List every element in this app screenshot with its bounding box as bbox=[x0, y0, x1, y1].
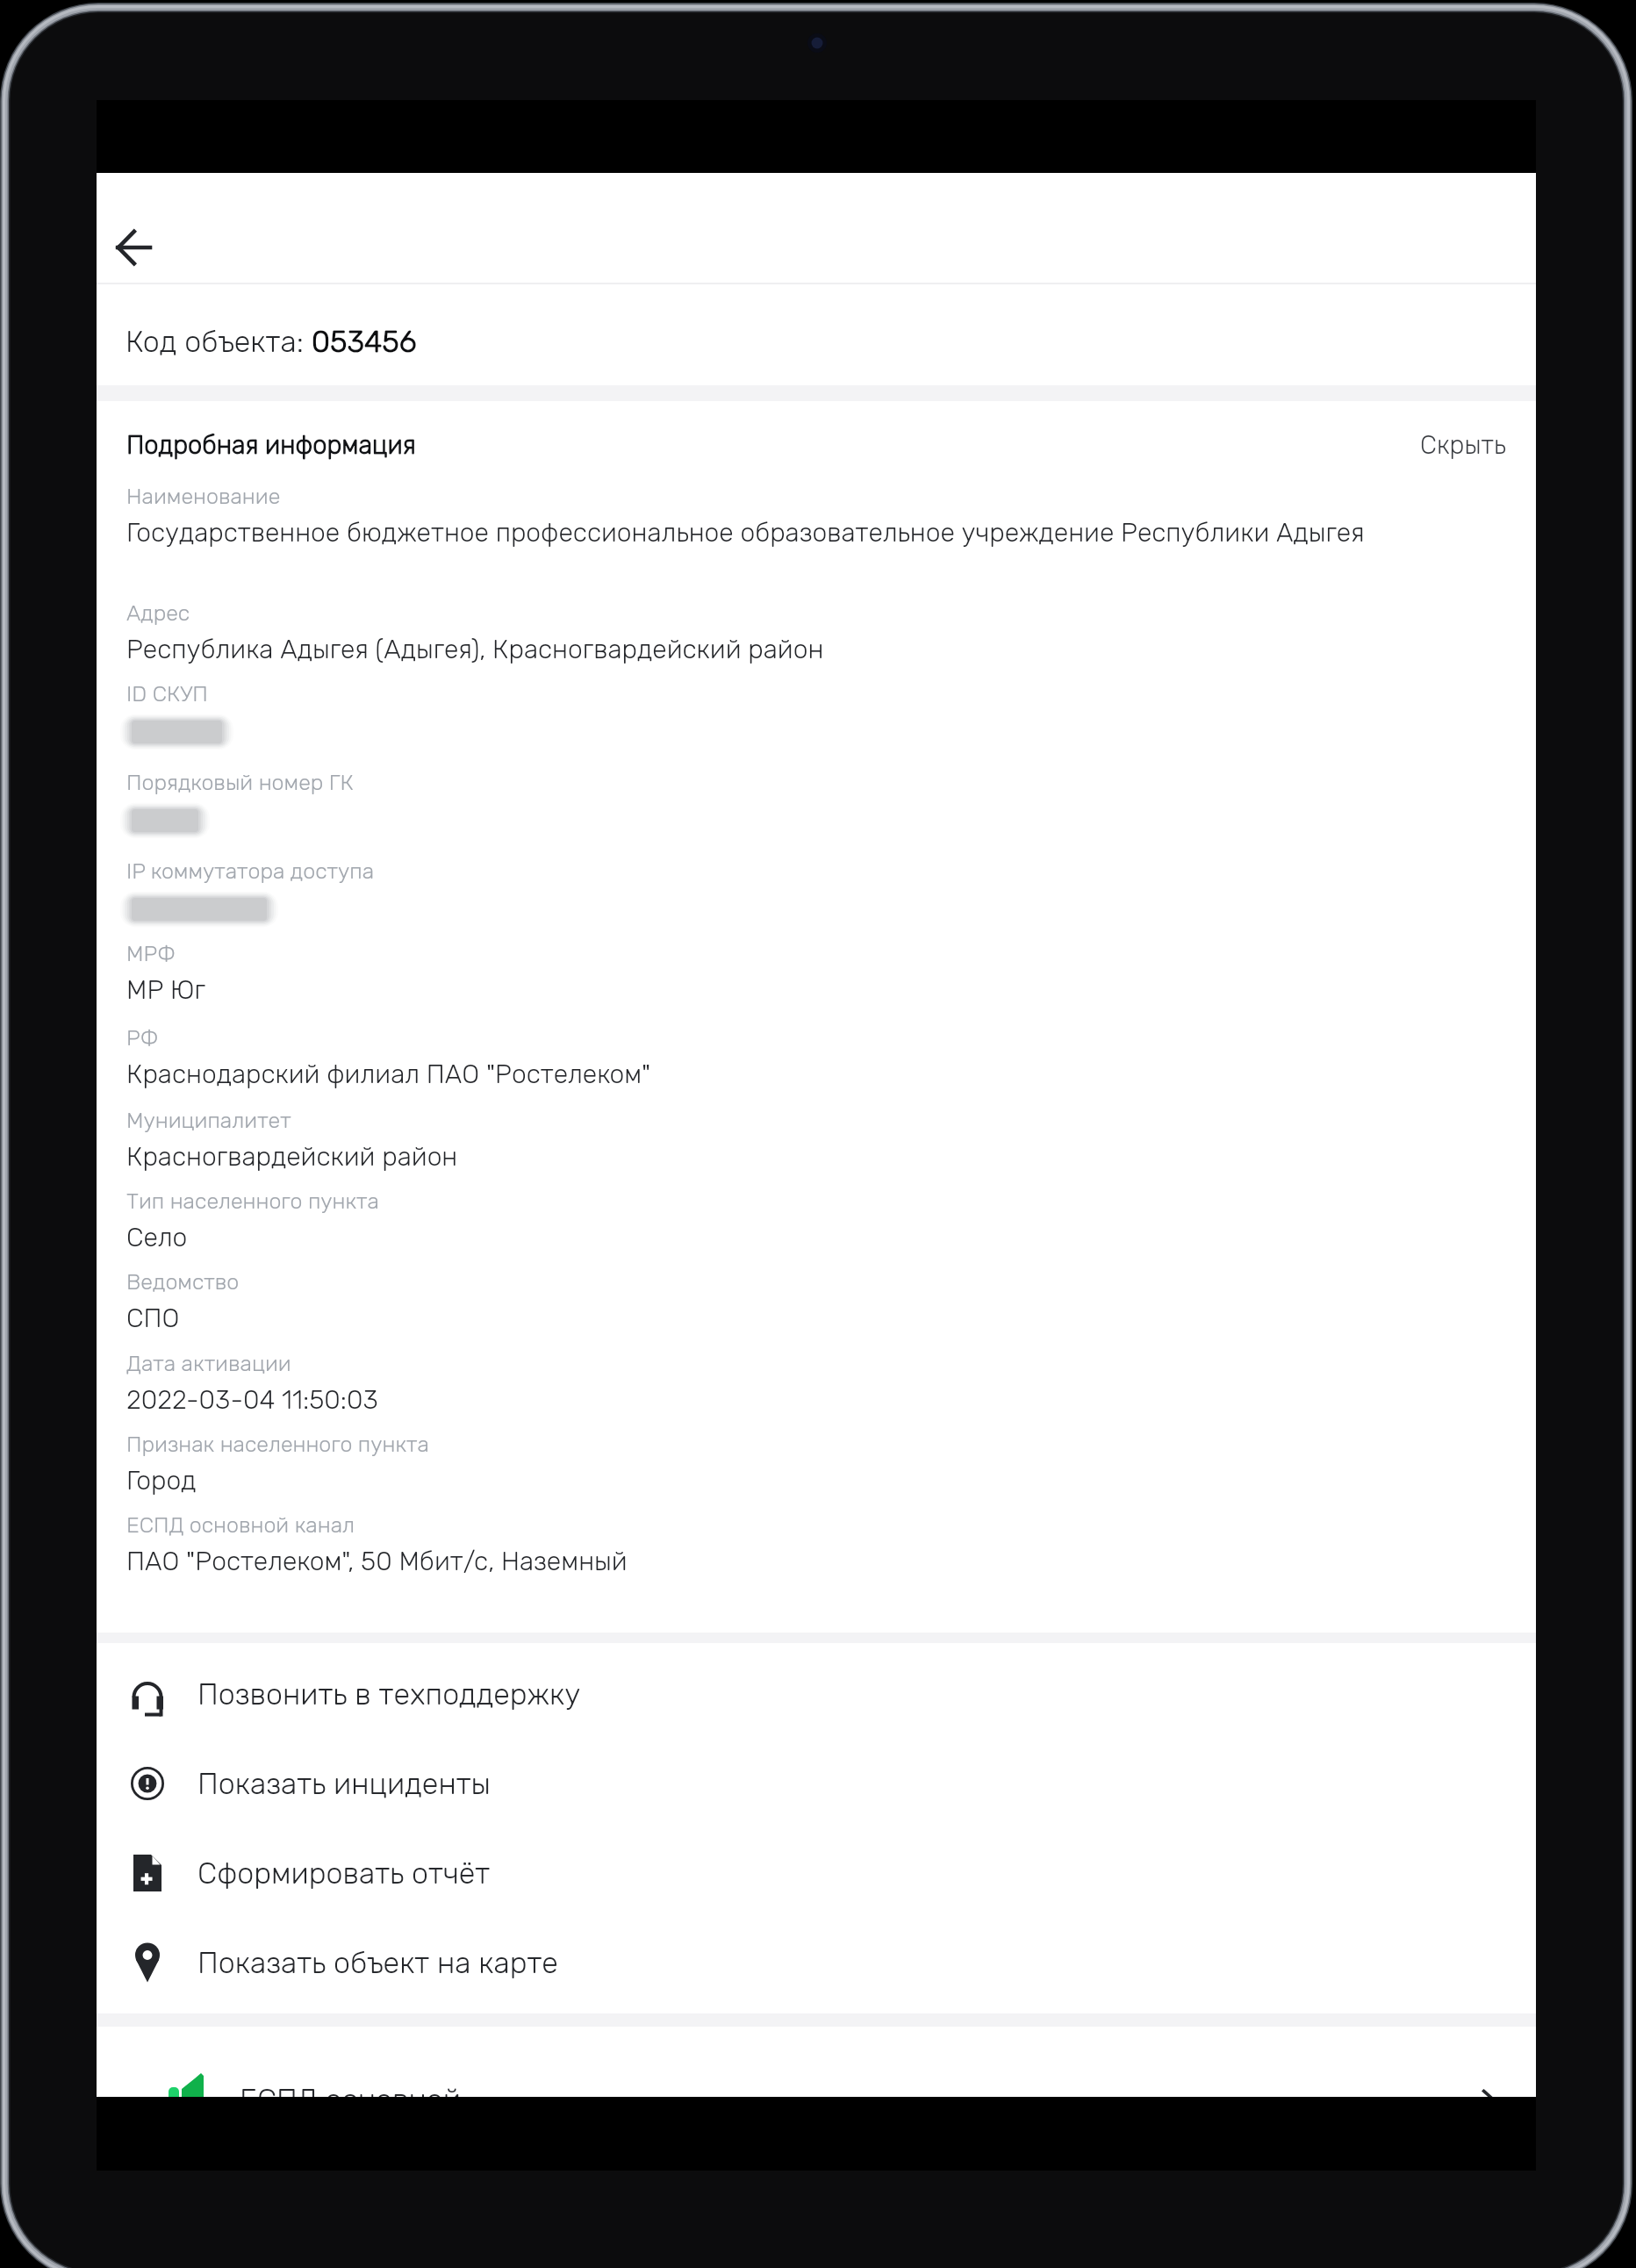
button[interactable]: Open bbox=[1475, 2086, 1503, 2097]
staticText: РФ bbox=[126, 1025, 159, 1051]
staticText: Скрыть bbox=[1420, 430, 1506, 460]
button[interactable]: Позвонить в техподдержку bbox=[97, 1649, 1536, 1739]
staticText: Краснодарский филиал ПАО "Ростелеком" bbox=[126, 1059, 651, 1090]
staticText: МР Юг bbox=[126, 974, 205, 1006]
staticText: СПО bbox=[126, 1303, 180, 1334]
button[interactable]: Скрыть bbox=[1420, 430, 1506, 460]
staticText: Дата активации bbox=[126, 1351, 291, 1377]
staticText: Тип населенного пункта bbox=[126, 1188, 379, 1215]
staticText: ПАО "Ростелеком", 50 Мбит/с, Наземный bbox=[126, 1546, 628, 1577]
staticText: Адрес bbox=[126, 600, 190, 627]
staticText: Показать объект на карте bbox=[197, 1945, 558, 1980]
staticText: ЕСПД основной bbox=[240, 2082, 461, 2097]
staticText: ID СКУП bbox=[126, 681, 208, 707]
staticText: Позвонить в техподдержку bbox=[197, 1676, 581, 1712]
staticText: 2022-03-04 11:50:03 bbox=[126, 1384, 378, 1416]
staticText: Государственное бюджетное профессиональн… bbox=[126, 517, 1365, 549]
staticText: IP коммутатора доступа bbox=[126, 858, 375, 885]
staticText: Порядковый номер ГК bbox=[126, 770, 354, 796]
staticText: Признак населенного пункта bbox=[126, 1432, 429, 1458]
staticText: Ведомство bbox=[126, 1269, 240, 1295]
button[interactable]: Сформировать отчёт bbox=[97, 1828, 1536, 1918]
button[interactable]: Показать объект на карте bbox=[97, 1918, 1536, 2007]
staticText: Подробная информация bbox=[126, 430, 416, 460]
button[interactable]: Back bbox=[109, 207, 184, 283]
button[interactable]: Показать инциденты bbox=[97, 1739, 1536, 1828]
staticText: МРФ bbox=[126, 941, 176, 967]
staticText: Сформировать отчёт bbox=[197, 1855, 491, 1891]
staticText: Республика Адыгея (Адыгея), Красногварде… bbox=[126, 634, 824, 665]
button[interactable]: ЕСПД основной bbox=[97, 2027, 1536, 2097]
staticText: Город bbox=[126, 1465, 197, 1496]
staticText: Муниципалитет bbox=[126, 1108, 291, 1134]
staticText: Красногвардейский район bbox=[126, 1141, 458, 1173]
staticText: Наименование bbox=[126, 484, 281, 510]
staticText: ЕСПД основной канал bbox=[126, 1512, 355, 1539]
staticText: Село bbox=[126, 1222, 188, 1253]
staticText: Показать инциденты bbox=[197, 1766, 491, 1801]
staticText: Код объекта: bbox=[126, 324, 312, 359]
staticText: 053456 bbox=[312, 324, 417, 359]
